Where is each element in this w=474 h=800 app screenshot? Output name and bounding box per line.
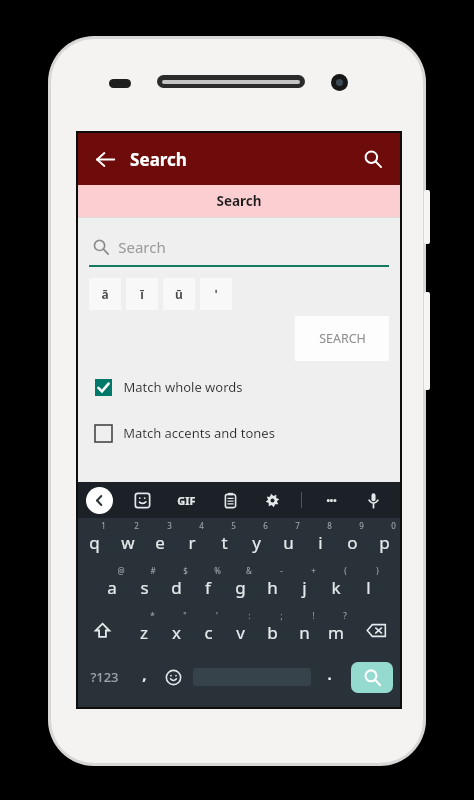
staticText: j <box>302 576 307 599</box>
button[interactable]: Match whole words <box>89 374 389 400</box>
button[interactable]: t <box>208 518 240 563</box>
staticText: b <box>267 621 278 644</box>
staticText: g <box>235 576 246 599</box>
button[interactable]: h <box>256 563 288 608</box>
button[interactable]: w <box>111 518 144 563</box>
button[interactable]: Search <box>359 145 387 173</box>
button[interactable]: x <box>160 608 192 653</box>
staticText: Search <box>130 148 187 171</box>
staticText: w <box>121 531 135 554</box>
button[interactable]: y <box>240 518 272 563</box>
button[interactable]: r <box>176 518 208 563</box>
staticText: y <box>252 531 261 554</box>
staticText: 8 <box>327 520 332 531</box>
staticText: t <box>221 531 228 554</box>
staticText: d <box>171 576 182 599</box>
button[interactable]: u <box>272 518 304 563</box>
button[interactable]: SEARCH <box>295 316 389 361</box>
button[interactable]: . <box>315 653 344 701</box>
staticText: Match whole words <box>123 378 243 396</box>
staticText: s <box>140 576 149 599</box>
staticText: ? <box>343 610 347 621</box>
staticText: u <box>283 531 294 554</box>
staticText: ) <box>376 565 379 576</box>
staticText: SEARCH <box>319 330 366 347</box>
staticText: , <box>142 664 147 684</box>
staticText: h <box>267 576 278 599</box>
staticText: q <box>89 531 100 554</box>
button[interactable]: a <box>95 563 128 608</box>
button[interactable]: e <box>144 518 176 563</box>
button[interactable]: d <box>160 563 192 608</box>
staticText: $ <box>183 565 188 576</box>
button[interactable]: v <box>224 608 256 653</box>
button[interactable]: Backspace <box>352 608 400 653</box>
button[interactable]: l <box>352 563 384 608</box>
staticText: i <box>318 531 323 554</box>
staticText: ū <box>175 286 183 302</box>
staticText: GIF <box>177 493 196 508</box>
button[interactable]: Space <box>188 653 315 701</box>
staticText: x <box>172 621 181 644</box>
staticText: + <box>311 565 316 576</box>
staticText: 4 <box>199 520 204 531</box>
staticText: 3 <box>167 520 172 531</box>
staticText: ( <box>344 565 347 576</box>
staticText: % <box>214 565 221 576</box>
staticText: ' <box>216 610 218 621</box>
staticText: 9 <box>359 520 364 531</box>
button[interactable]: Stickers <box>129 487 155 513</box>
button[interactable]: Voice input <box>360 487 386 513</box>
staticText: Search <box>118 237 166 257</box>
staticText: @ <box>117 565 125 576</box>
staticText: * <box>150 610 155 621</box>
button[interactable]: f <box>192 563 224 608</box>
button[interactable]: Shift <box>78 608 127 653</box>
button[interactable]: i <box>304 518 336 563</box>
staticText: r <box>188 531 196 554</box>
button[interactable]: b <box>256 608 288 653</box>
button[interactable]: Match accents and tones <box>89 420 389 446</box>
button[interactable]: ?123 <box>78 653 130 701</box>
staticText: e <box>155 531 165 554</box>
staticText: 6 <box>263 520 268 531</box>
button[interactable]: Search <box>78 185 400 217</box>
button[interactable]: ' <box>200 278 232 310</box>
button[interactable]: ī <box>126 278 158 310</box>
button[interactable]: More options <box>318 487 344 513</box>
button[interactable]: ū <box>163 278 195 310</box>
button[interactable]: q <box>78 518 111 563</box>
staticText: Search <box>216 192 262 210</box>
button[interactable]: Settings <box>259 487 285 513</box>
staticText: v <box>236 621 245 644</box>
staticText: & <box>246 565 252 576</box>
staticText: z <box>140 621 148 644</box>
button[interactable]: z <box>127 608 160 653</box>
staticText: Match accents and tones <box>123 424 275 442</box>
button[interactable]: g <box>224 563 256 608</box>
button[interactable]: Clipboard <box>217 487 243 513</box>
staticText: 1 <box>101 520 106 531</box>
button[interactable]: ā <box>89 278 121 310</box>
staticText: 0 <box>391 520 396 531</box>
button[interactable]: Search <box>351 662 393 693</box>
button[interactable]: Back <box>91 145 119 173</box>
button[interactable]: n <box>288 608 320 653</box>
button[interactable]: k <box>320 563 352 608</box>
button[interactable]: o <box>336 518 368 563</box>
staticText: ī <box>140 286 144 302</box>
button[interactable]: , <box>130 653 159 701</box>
button[interactable]: c <box>192 608 224 653</box>
button[interactable]: GIF <box>171 485 201 515</box>
button[interactable]: s <box>128 563 160 608</box>
button[interactable]: Close keyboard toolbar <box>86 487 113 514</box>
button[interactable]: p <box>368 518 400 563</box>
staticText: 7 <box>295 520 300 531</box>
staticText: m <box>328 621 344 644</box>
button[interactable]: m <box>320 608 352 653</box>
button[interactable]: j <box>288 563 320 608</box>
button[interactable]: Emoji <box>159 653 188 701</box>
staticText: c <box>204 621 213 644</box>
button[interactable]: Search <box>89 235 389 259</box>
staticText: ?123 <box>90 668 119 686</box>
